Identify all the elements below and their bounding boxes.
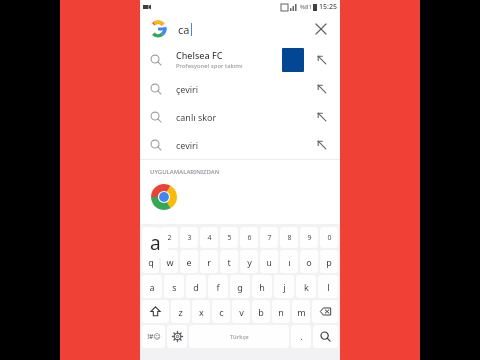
button[interactable]: n — [272, 300, 290, 323]
staticText: s — [172, 281, 177, 293]
button[interactable]: q — [142, 250, 159, 273]
staticText: f — [216, 281, 220, 293]
staticText: e — [186, 256, 192, 268]
button[interactable]: 6 — [240, 227, 258, 248]
button[interactable]: Chrome — [150, 183, 178, 211]
staticText: %81 — [300, 3, 312, 11]
staticText: 5 — [227, 233, 232, 243]
button[interactable]: . — [291, 325, 311, 348]
staticText: z — [178, 306, 183, 318]
button[interactable]: ceviri — [140, 131, 340, 159]
staticText: d — [193, 281, 199, 293]
button[interactable]: j — [274, 275, 294, 298]
staticText: o — [306, 256, 312, 268]
staticText: x — [199, 306, 204, 318]
staticText: k — [304, 281, 309, 293]
button[interactable]: m — [292, 300, 310, 323]
staticText: p — [326, 256, 332, 268]
button[interactable]: 3 — [180, 227, 198, 248]
button[interactable]: b — [252, 300, 270, 323]
staticText: 8 — [287, 233, 292, 243]
staticText: 3 — [187, 233, 192, 243]
staticText: ca — [178, 22, 190, 37]
staticText: t — [227, 256, 231, 268]
staticText: l — [327, 281, 330, 293]
staticText: Profesyonel spor takımı — [176, 62, 243, 70]
staticText: m — [297, 306, 306, 318]
button[interactable]: v — [232, 300, 250, 323]
button[interactable]: canlı skor — [140, 103, 340, 131]
button[interactable]: t — [220, 250, 238, 273]
staticText: u — [266, 256, 272, 268]
button[interactable]: x — [192, 300, 210, 323]
staticText: ı — [288, 256, 291, 268]
button[interactable]: h — [252, 275, 272, 298]
staticText: . — [300, 331, 303, 342]
staticText: g — [237, 281, 243, 293]
staticText: UYGULAMALARINIZDAN — [150, 168, 220, 176]
button[interactable]: Clear — [312, 20, 330, 38]
button[interactable]: 5 — [220, 227, 238, 248]
button[interactable]: g — [230, 275, 250, 298]
staticText: 7 — [267, 233, 272, 243]
button[interactable]: ı — [280, 250, 298, 273]
button[interactable]: 1 — [142, 227, 159, 248]
staticText: 1 — [148, 233, 153, 243]
staticText: b — [258, 306, 264, 318]
button[interactable]: Türkçe — [189, 325, 289, 348]
button[interactable]: p — [320, 250, 338, 273]
button[interactable]: y — [240, 250, 258, 273]
button[interactable]: 4 — [200, 227, 218, 248]
staticText: c — [219, 306, 224, 318]
staticText: !#☺ — [147, 332, 161, 342]
staticText: r — [207, 256, 211, 268]
staticText: v — [239, 306, 244, 318]
button[interactable]: w — [161, 250, 178, 273]
button[interactable]: 8 — [280, 227, 298, 248]
button[interactable]: Backspace — [312, 300, 338, 323]
staticText: w — [166, 256, 174, 268]
button[interactable]: z — [171, 300, 190, 323]
staticText: y — [247, 256, 252, 268]
button[interactable]: a — [142, 275, 162, 298]
staticText: 0 — [327, 233, 332, 243]
button[interactable]: Insert suggestion — [314, 52, 330, 68]
button[interactable]: Search — [313, 325, 338, 348]
button[interactable]: Insert suggestion — [314, 81, 330, 97]
button[interactable]: k — [296, 275, 316, 298]
staticText: çeviri — [176, 83, 199, 95]
button[interactable]: 9 — [300, 227, 318, 248]
button[interactable]: e — [180, 250, 198, 273]
button[interactable]: c — [212, 300, 230, 323]
button[interactable]: !#☺ — [142, 325, 165, 348]
button[interactable]: l — [318, 275, 338, 298]
button[interactable]: Settings — [167, 325, 187, 348]
staticText: 6 — [247, 233, 252, 243]
button[interactable]: o — [300, 250, 318, 273]
button[interactable]: d — [186, 275, 206, 298]
staticText: canlı skor — [176, 111, 217, 123]
button[interactable]: Chelsea FC — [140, 44, 340, 75]
staticText: Chelsea FC — [176, 49, 223, 61]
button[interactable]: r — [200, 250, 218, 273]
staticText: 15:25 — [319, 2, 337, 12]
staticText: ceviri — [176, 139, 199, 151]
staticText: a — [149, 281, 155, 293]
staticText: a — [150, 230, 161, 256]
button[interactable]: Shift — [142, 300, 169, 323]
button[interactable]: çeviri — [140, 75, 340, 103]
button[interactable]: s — [164, 275, 184, 298]
button[interactable]: Insert suggestion — [314, 109, 330, 125]
button[interactable]: f — [208, 275, 228, 298]
staticText: 4 — [207, 233, 212, 243]
staticText: h — [259, 281, 265, 293]
button[interactable]: 0 — [320, 227, 338, 248]
staticText: n — [278, 306, 284, 318]
button[interactable]: Insert suggestion — [314, 137, 330, 153]
button[interactable]: u — [260, 250, 278, 273]
button[interactable]: ca — [140, 14, 340, 44]
button[interactable]: 2 — [161, 227, 178, 248]
staticText: Türkçe — [230, 333, 249, 341]
staticText: j — [283, 281, 286, 293]
button[interactable]: 7 — [260, 227, 278, 248]
